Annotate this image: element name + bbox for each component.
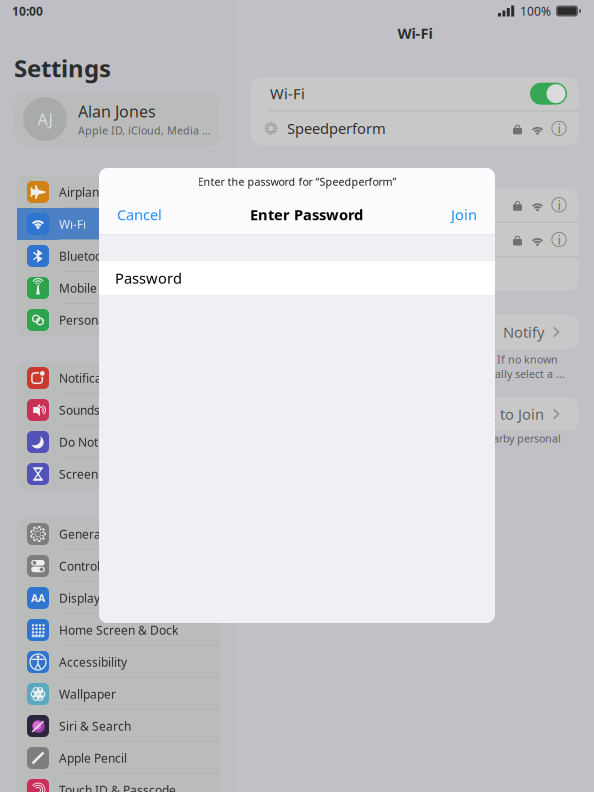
staticText: Cancel	[117, 204, 162, 224]
staticText: Wi-Fi	[270, 84, 305, 104]
staticText: Ask to Join	[472, 404, 544, 424]
button[interactable]: Home Screen & Dock	[17, 614, 220, 646]
staticText: Password	[115, 268, 182, 288]
button[interactable]: AJ	[14, 92, 219, 146]
staticText: Bluetooth	[59, 248, 113, 264]
button[interactable]: Touch ID & Passcode	[17, 774, 220, 792]
staticText: 100%	[520, 3, 551, 19]
staticText: Sounds	[59, 402, 100, 418]
staticText: Alan Jones	[78, 100, 156, 122]
staticText: AA	[31, 591, 45, 605]
button[interactable]: Notifications	[17, 362, 220, 394]
button[interactable]: Wallpaper	[17, 678, 220, 710]
button[interactable]: Mobile Data	[17, 272, 220, 304]
staticText: Airplane Mode	[59, 184, 141, 200]
button[interactable]: Control Centre	[17, 550, 220, 582]
staticText: Touch ID & Passcode	[59, 782, 176, 792]
button[interactable]: Wi-Fi on	[530, 83, 567, 105]
staticText: i	[557, 231, 560, 248]
staticText: Apple ID, iCloud, Media &...	[78, 123, 213, 138]
staticText: Notify	[503, 322, 544, 342]
staticText: Settings	[14, 52, 111, 84]
staticText: Do Not Disturb	[59, 434, 142, 450]
staticText: Enter the password for “Speedperform”	[197, 174, 396, 189]
button[interactable]: Join	[433, 195, 495, 234]
staticText: Wi-Fi	[59, 216, 86, 232]
staticText: i	[557, 119, 560, 137]
staticText: Known networks will be joined automatica…	[265, 352, 567, 381]
button[interactable]: Apple Pencil	[17, 742, 220, 774]
staticText: 10:00	[12, 3, 43, 19]
button[interactable]: General	[17, 518, 220, 550]
button[interactable]: Siri & Search	[17, 710, 220, 742]
staticText: AJ	[37, 108, 52, 130]
button[interactable]: Airplane Mode	[17, 176, 220, 208]
button[interactable]: Sounds	[17, 394, 220, 426]
staticText: Accessibility	[59, 654, 127, 670]
staticText: Mobile Data	[59, 280, 127, 296]
staticText: Display & Brightness	[59, 590, 175, 606]
staticText: Siri & Search	[59, 718, 131, 734]
button[interactable]: Cancel	[99, 195, 180, 234]
staticText: Control Centre	[59, 558, 141, 574]
button[interactable]: Screen Time	[17, 458, 220, 490]
button[interactable]: Wi-Fi	[17, 208, 220, 240]
staticText: Wi-Fi	[397, 23, 432, 43]
button[interactable]: Accessibility	[17, 646, 220, 678]
staticText: Home Screen & Dock	[59, 622, 178, 638]
staticText: Enter Password	[250, 204, 363, 224]
button[interactable]: Personal Hotspot	[17, 304, 220, 336]
staticText: General	[59, 526, 104, 542]
button[interactable]: Bluetooth	[17, 240, 220, 272]
staticText: Wallpaper	[59, 686, 116, 702]
staticText: i	[557, 196, 560, 214]
staticText: Allow this device to automatically disco…	[265, 431, 561, 460]
staticText: Personal Hotspot	[59, 312, 155, 328]
button[interactable]: Do Not Disturb	[17, 426, 220, 458]
button[interactable]: AA	[17, 582, 220, 614]
staticText: Speedperform	[287, 118, 386, 138]
staticText: Notifications	[59, 370, 129, 386]
staticText: Screen Time	[59, 466, 129, 482]
staticText: Join	[451, 204, 477, 224]
staticText: Apple Pencil	[59, 750, 127, 766]
